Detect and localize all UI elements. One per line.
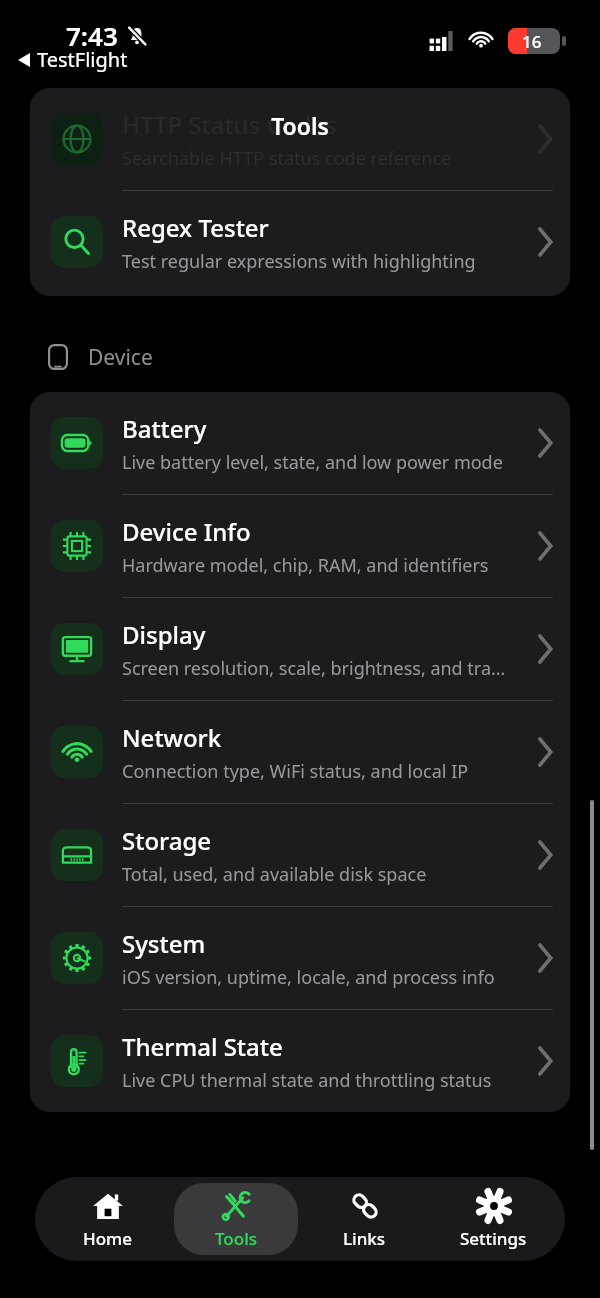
button[interactable]: Thermal State bbox=[30, 1010, 570, 1112]
staticText: 16 bbox=[522, 30, 542, 53]
button[interactable]: Battery bbox=[30, 392, 570, 495]
staticText: TestFlight bbox=[37, 46, 128, 73]
staticText: Total, used, and available disk space bbox=[122, 862, 427, 887]
staticText: Hardware model, chip, RAM, and identifie… bbox=[122, 553, 489, 578]
button[interactable]: Display bbox=[30, 598, 570, 701]
staticText: Device bbox=[88, 343, 153, 372]
staticText: iOS version, uptime, locale, and process… bbox=[122, 965, 495, 990]
button[interactable]: Storage bbox=[30, 804, 570, 907]
button[interactable]: Network bbox=[30, 701, 570, 804]
staticText: Test regular expressions with highlighti… bbox=[122, 249, 476, 274]
staticText: Connection type, WiFi status, and local … bbox=[122, 759, 469, 784]
button[interactable]: HTTP Status Codes bbox=[30, 88, 570, 191]
staticText: Home bbox=[83, 1227, 132, 1250]
button[interactable]: Links bbox=[302, 1183, 426, 1255]
staticText: Live CPU thermal state and throttling st… bbox=[122, 1068, 492, 1093]
button[interactable]: Regex Tester bbox=[30, 191, 570, 293]
staticText: Battery bbox=[122, 412, 207, 445]
staticText: Regex Tester bbox=[122, 211, 269, 244]
staticText: Settings bbox=[460, 1227, 527, 1250]
button[interactable]: Tools bbox=[174, 1183, 298, 1255]
staticText: System bbox=[122, 927, 206, 960]
staticText: Searchable HTTP status code reference bbox=[122, 146, 452, 171]
staticText: Tools bbox=[0, 110, 600, 141]
staticText: Storage bbox=[122, 824, 212, 857]
staticText: Device Info bbox=[122, 515, 251, 548]
button[interactable]: System bbox=[30, 907, 570, 1010]
staticText: Network bbox=[122, 721, 222, 754]
staticText: Live battery level, state, and low power… bbox=[122, 450, 503, 475]
button[interactable]: Settings bbox=[431, 1183, 555, 1255]
staticText: Links bbox=[343, 1227, 386, 1250]
staticText: Tools bbox=[215, 1227, 257, 1250]
button[interactable]: Home bbox=[45, 1183, 169, 1255]
button[interactable]: Device Info bbox=[30, 495, 570, 598]
staticText: Screen resolution, scale, brightness, an… bbox=[122, 656, 506, 681]
staticText: Thermal State bbox=[122, 1030, 283, 1063]
staticText: Display bbox=[122, 618, 206, 651]
staticText: 7:43 bbox=[66, 18, 118, 53]
staticText: HTTP Status Codes bbox=[122, 108, 337, 141]
